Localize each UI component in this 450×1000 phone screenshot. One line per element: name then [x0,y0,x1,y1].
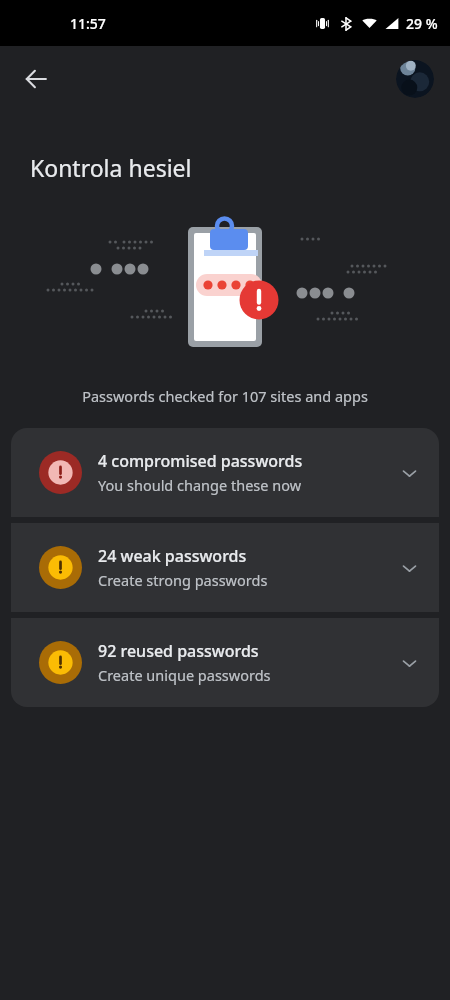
button[interactable]: Expand [389,548,429,588]
staticText: 92 reused passwords [98,640,259,662]
button[interactable]: 92 reused passwords [11,618,439,707]
staticText: Create strong passwords [98,570,268,590]
button[interactable]: 24 weak passwords [11,523,439,612]
staticText: Passwords checked for 107 sites and apps [0,386,450,406]
staticText: 29 % [406,14,438,33]
button[interactable]: Account [396,60,434,98]
staticText: 4 compromised passwords [98,450,303,472]
button[interactable]: 4 compromised passwords [11,428,439,517]
staticText: 24 weak passwords [98,545,247,567]
staticText: You should change these now [98,475,302,495]
button[interactable]: Expand [389,643,429,683]
staticText: 11:57 [70,14,106,33]
button[interactable]: Back [14,57,58,101]
staticText: Kontrola hesiel [30,152,192,183]
button[interactable]: Expand [389,453,429,493]
staticText: Create unique passwords [98,665,271,685]
